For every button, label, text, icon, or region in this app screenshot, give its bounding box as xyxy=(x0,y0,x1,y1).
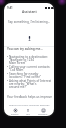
staticText: Searching for nearby locations: “Find co… xyxy=(9,72,52,79)
staticText: • xyxy=(7,55,9,59)
button[interactable]: Microphone xyxy=(4,36,54,41)
staticText: Assistant xyxy=(22,9,37,14)
staticText: Search for more Assistant features xyxy=(9,103,50,106)
staticText: Say something, I'm listening… xyxy=(8,20,51,24)
staticText: Navigating to a destination: “Navigate t… xyxy=(9,55,52,65)
staticText: Talk xyxy=(26,113,30,116)
staticText: Calling your current contacts: “Call Mom… xyxy=(9,65,52,72)
staticText: Your feedback helps us improve xyxy=(7,95,52,99)
staticText: • xyxy=(7,65,9,69)
staticText: You can try asking me… xyxy=(7,47,44,51)
button[interactable]: Explore xyxy=(10,109,20,116)
staticText: Asking what Points of Interest are nearb… xyxy=(9,79,52,89)
staticText: Keyboard xyxy=(38,113,48,116)
staticText: • xyxy=(7,79,9,83)
staticText: • xyxy=(7,72,9,76)
staticText: 9:41 xyxy=(7,6,13,10)
button[interactable]: Talk xyxy=(25,109,31,116)
button[interactable]: Keyboard xyxy=(37,109,49,116)
staticText: Explore xyxy=(11,113,19,116)
